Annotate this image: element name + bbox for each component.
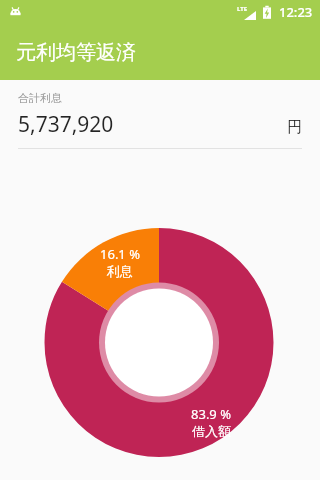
other: Android: [8, 5, 23, 20]
staticText: 利息: [107, 263, 133, 279]
staticText: 12:23: [279, 3, 313, 21]
button[interactable]: 合計利息: [0, 80, 320, 149]
staticText: 円: [287, 118, 302, 137]
staticText: 元利均等返済: [16, 40, 136, 65]
staticText: 83.9 %: [191, 405, 231, 423]
staticText: 5,737,920: [18, 110, 114, 139]
staticText: 16.1 %: [100, 245, 140, 263]
staticText: LTE: [237, 5, 248, 13]
staticText: 借入額: [192, 423, 231, 439]
staticText: 合計利息: [18, 91, 62, 105]
